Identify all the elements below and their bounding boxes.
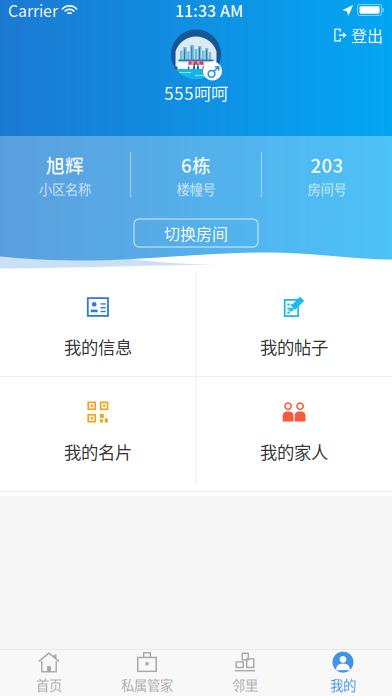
staticText: 我的名片 — [64, 439, 132, 464]
staticText: 切换房间 — [164, 221, 228, 245]
button[interactable]: 登出 — [324, 22, 392, 48]
staticText: 楼幢号 — [176, 179, 215, 198]
staticText: 11:33 AM — [175, 0, 243, 22]
button[interactable]: 邻里 — [196, 650, 294, 696]
staticText: 6栋 — [181, 151, 211, 178]
staticText: 首页 — [36, 675, 62, 694]
staticText: 203 — [310, 151, 343, 178]
staticText: 私属管家 — [121, 675, 173, 694]
button[interactable]: 我的家人 — [197, 377, 392, 484]
staticText: 登出 — [351, 23, 383, 47]
staticText: 小区名称 — [39, 179, 91, 198]
staticText: 555呵呵 — [164, 80, 228, 105]
button[interactable]: 我的 — [294, 650, 392, 696]
button[interactable]: 我的帖子 — [197, 272, 392, 376]
staticText: 我的家人 — [260, 439, 328, 464]
button[interactable]: 我的名片 — [0, 377, 195, 484]
staticText: 我的 — [330, 675, 356, 694]
button[interactable]: 我的信息 — [0, 272, 195, 376]
staticText: 旭辉 — [46, 151, 84, 178]
staticText: 我的帖子 — [260, 334, 328, 359]
staticText: 我的信息 — [64, 334, 132, 359]
staticText: 邻里 — [232, 675, 258, 694]
staticText: 房间号 — [307, 179, 346, 198]
button[interactable]: 首页 — [0, 650, 98, 696]
staticText: Carrier — [8, 0, 58, 22]
button[interactable]: 私属管家 — [98, 650, 196, 696]
button[interactable]: 切换房间 — [134, 219, 258, 247]
